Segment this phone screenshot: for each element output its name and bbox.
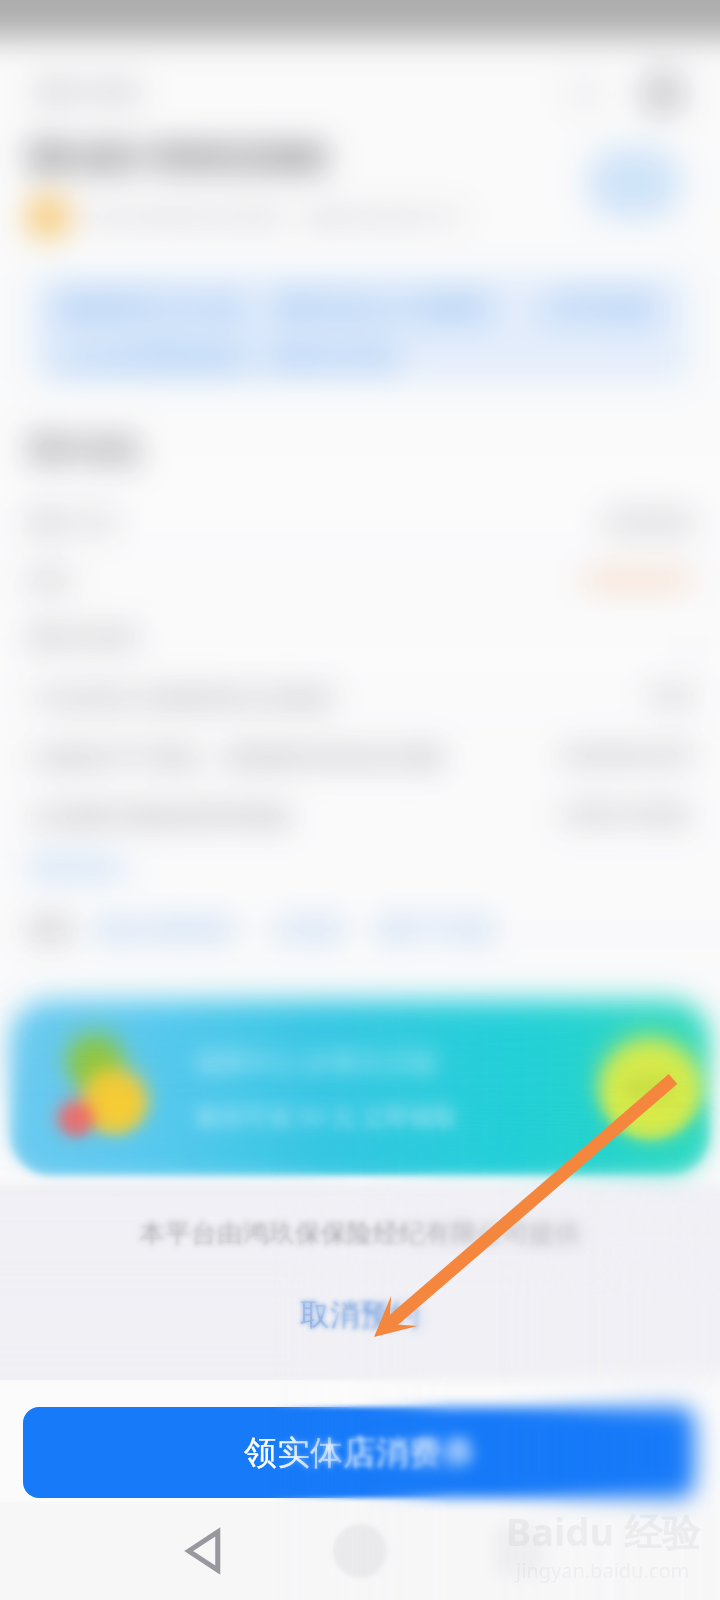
button[interactable]: Recent apps bbox=[494, 1526, 544, 1576]
button[interactable]: 领券中心 好券天天领 bbox=[10, 1000, 710, 1175]
button[interactable]: 状态 bbox=[28, 566, 692, 594]
button[interactable]: 领取 bbox=[598, 1036, 702, 1140]
button[interactable]: 预约时间段 bbox=[28, 623, 692, 653]
button[interactable]: 1.到店请出示核销码给店员核销 bbox=[28, 682, 692, 712]
button[interactable]: 2.核销后不可退改，请按预约时间到店消费 bbox=[28, 741, 692, 771]
button[interactable]: 预约门店 bbox=[28, 509, 692, 537]
button[interactable]: 领实体店消费券 bbox=[23, 1407, 695, 1498]
button[interactable]: 查看更多 › bbox=[28, 850, 138, 883]
button[interactable]: 取消预约 bbox=[300, 1296, 420, 1334]
button[interactable]: More options bbox=[640, 70, 686, 116]
button[interactable]: 状态 bbox=[28, 566, 692, 594]
button[interactable]: 领券中心 好券天天领 bbox=[10, 1000, 710, 1175]
button[interactable]: 预约时间段 bbox=[28, 623, 692, 653]
button[interactable]: 取消预约 bbox=[300, 1296, 420, 1334]
button[interactable]: Back bbox=[176, 1522, 234, 1580]
button[interactable]: 领取 bbox=[598, 1036, 702, 1140]
button[interactable]: 2.核销后不可退改，请按预约时间到店消费 bbox=[28, 741, 692, 771]
button[interactable]: 核销码已生成，请到店出示核销 bbox=[30, 274, 690, 382]
button[interactable]: Back bbox=[176, 1522, 234, 1580]
button[interactable]: 核销码已生成，请到店出示核销 bbox=[30, 274, 690, 382]
button[interactable]: More options bbox=[640, 70, 686, 116]
button[interactable]: 1.到店请出示核销码给店员核销 bbox=[28, 682, 692, 712]
button[interactable]: 核销码已生成，请到店出示核销 bbox=[30, 274, 690, 382]
button[interactable]: 领取 bbox=[598, 1036, 702, 1140]
button[interactable]: 取消预约 bbox=[300, 1296, 420, 1334]
button[interactable]: 状态 bbox=[28, 566, 692, 594]
button[interactable]: 预约时间段 bbox=[28, 623, 692, 653]
button[interactable]: 预约门店 bbox=[28, 509, 692, 537]
button[interactable]: 1.到店请出示核销码给店员核销 bbox=[28, 682, 692, 712]
button[interactable]: 预约门店 bbox=[28, 509, 692, 537]
button[interactable]: 核销码已生成，请到店出示核销 bbox=[30, 274, 690, 382]
button[interactable]: 2.核销后不可退改，请按预约时间到店消费 bbox=[28, 741, 692, 771]
button[interactable]: Home bbox=[333, 1524, 387, 1578]
button[interactable]: 1.到店请出示核销码给店员核销 bbox=[28, 682, 692, 712]
button[interactable]: 2.核销后不可退改，请按预约时间到店消费 bbox=[28, 741, 692, 771]
button[interactable]: 领取 bbox=[598, 1036, 702, 1140]
button[interactable]: 领实体店消费券 bbox=[23, 1407, 695, 1498]
button[interactable]: More options bbox=[640, 70, 686, 116]
button[interactable]: 核销码已生成，请到店出示核销 bbox=[30, 274, 690, 382]
button[interactable]: 查看更多 › bbox=[28, 850, 138, 883]
button[interactable]: Recent apps bbox=[494, 1526, 544, 1576]
button[interactable]: 取消预约 bbox=[300, 1296, 420, 1334]
button[interactable]: 1.到店请出示核销码给店员核销 bbox=[28, 682, 692, 712]
button[interactable]: 预约门店 bbox=[28, 509, 692, 537]
button[interactable]: 查看更多 › bbox=[28, 850, 138, 883]
button[interactable]: 3.如需取消请提前联系客服 bbox=[28, 800, 692, 830]
button[interactable]: 领券中心 好券天天领 bbox=[10, 1000, 710, 1175]
button[interactable]: 预约门店 bbox=[28, 509, 692, 537]
button[interactable]: 状态 bbox=[28, 566, 692, 594]
button[interactable]: Home bbox=[333, 1524, 387, 1578]
button[interactable]: 查看更多 › bbox=[28, 850, 138, 883]
button[interactable]: Home bbox=[333, 1524, 387, 1578]
button[interactable]: 1.到店请出示核销码给店员核销 bbox=[28, 682, 692, 712]
button[interactable]: 查看更多 › bbox=[28, 850, 138, 883]
button[interactable]: 2.核销后不可退改，请按预约时间到店消费 bbox=[28, 741, 692, 771]
button[interactable]: 核销码已生成，请到店出示核销 bbox=[30, 274, 690, 382]
button[interactable]: 状态 bbox=[28, 566, 692, 594]
button[interactable]: 领券中心 好券天天领 bbox=[10, 1000, 710, 1175]
button[interactable]: 领取 bbox=[598, 1036, 702, 1140]
button[interactable]: Recent apps bbox=[494, 1526, 544, 1576]
button[interactable]: Home bbox=[333, 1524, 387, 1578]
button[interactable]: 3.如需取消请提前联系客服 bbox=[28, 800, 692, 830]
button[interactable]: More options bbox=[640, 70, 686, 116]
button[interactable]: 查看更多 › bbox=[28, 850, 138, 883]
button[interactable]: 取消预约 bbox=[300, 1296, 420, 1334]
button[interactable]: Recent apps bbox=[494, 1526, 544, 1576]
button[interactable]: 领券中心 好券天天领 bbox=[10, 1000, 710, 1175]
button[interactable]: 3.如需取消请提前联系客服 bbox=[28, 800, 692, 830]
button[interactable]: 2.核销后不可退改，请按预约时间到店消费 bbox=[28, 741, 692, 771]
button[interactable]: 预约时间段 bbox=[28, 623, 692, 653]
button[interactable]: Recent apps bbox=[494, 1526, 544, 1576]
button[interactable]: 领实体店消费券 bbox=[23, 1407, 695, 1498]
button[interactable]: 查看更多 › bbox=[28, 850, 138, 883]
button[interactable]: 3.如需取消请提前联系客服 bbox=[28, 800, 692, 830]
button[interactable]: 2.核销后不可退改，请按预约时间到店消费 bbox=[28, 741, 692, 771]
button[interactable]: 2.核销后不可退改，请按预约时间到店消费 bbox=[28, 741, 692, 771]
button[interactable]: 2.核销后不可退改，请按预约时间到店消费 bbox=[28, 741, 692, 771]
button[interactable]: 状态 bbox=[28, 566, 692, 594]
button[interactable]: 领实体店消费券 bbox=[23, 1407, 695, 1498]
button[interactable]: Back bbox=[176, 1522, 234, 1580]
button[interactable]: Back bbox=[176, 1522, 234, 1580]
button[interactable]: 核销码已生成，请到店出示核销 bbox=[30, 274, 690, 382]
button[interactable]: More options bbox=[640, 70, 686, 116]
button[interactable]: 状态 bbox=[28, 566, 692, 594]
button[interactable]: 领取 bbox=[598, 1036, 702, 1140]
button[interactable]: 3.如需取消请提前联系客服 bbox=[28, 800, 692, 830]
button[interactable]: 取消预约 bbox=[300, 1296, 420, 1334]
button[interactable]: Home bbox=[333, 1524, 387, 1578]
button[interactable]: 取消预约 bbox=[300, 1296, 420, 1334]
button[interactable]: 2.核销后不可退改，请按预约时间到店消费 bbox=[28, 741, 692, 771]
button[interactable]: 1.到店请出示核销码给店员核销 bbox=[28, 682, 692, 712]
button[interactable]: 1.到店请出示核销码给店员核销 bbox=[28, 682, 692, 712]
button[interactable]: 领取 bbox=[598, 1036, 702, 1140]
